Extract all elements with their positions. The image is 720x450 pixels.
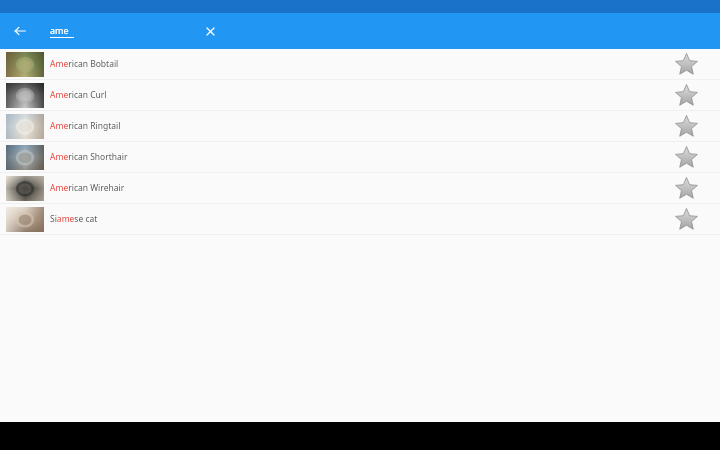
staticText: American Curl bbox=[50, 89, 107, 101]
button[interactable]: American Shorthair bbox=[0, 142, 720, 172]
button[interactable]: Favorite American Shorthair bbox=[671, 142, 701, 172]
button[interactable]: Favorite American Bobtail bbox=[671, 49, 701, 79]
button[interactable]: Favorite American Curl bbox=[671, 80, 701, 110]
button[interactable]: Siamese cat bbox=[0, 204, 720, 234]
button[interactable]: Back bbox=[8, 19, 32, 43]
staticText: Siamese cat bbox=[50, 213, 98, 225]
button[interactable]: American Bobtail bbox=[0, 49, 720, 79]
button[interactable]: Favorite American Wirehair bbox=[671, 173, 701, 203]
button[interactable]: American Ringtail bbox=[0, 111, 720, 141]
button[interactable]: ame bbox=[50, 24, 180, 38]
staticText: American Wirehair bbox=[50, 182, 125, 194]
button[interactable]: Clear search bbox=[199, 20, 221, 42]
button[interactable]: Favorite Siamese cat bbox=[671, 204, 701, 234]
button[interactable]: American Curl bbox=[0, 80, 720, 110]
staticText: American Ringtail bbox=[50, 120, 121, 132]
button[interactable]: Favorite American Ringtail bbox=[671, 111, 701, 141]
staticText: ame bbox=[50, 24, 69, 36]
staticText: American Bobtail bbox=[50, 58, 119, 70]
staticText: American Shorthair bbox=[50, 151, 128, 163]
button[interactable]: American Wirehair bbox=[0, 173, 720, 203]
